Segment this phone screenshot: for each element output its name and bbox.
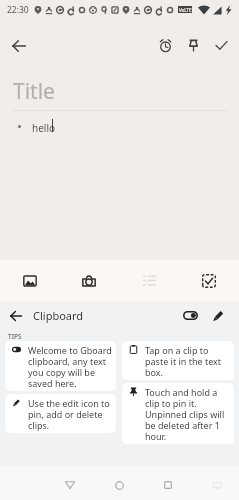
staticText: Use the edit icon to pin, add or delete … [28,397,113,431]
button[interactable]: Touch and hold a clip to pin it. Unpinne… [122,383,234,444]
button[interactable]: Set reminder [152,32,179,59]
button[interactable]: Pin note [180,32,207,59]
button[interactable]: Back [58,473,82,497]
staticText: Tap on a clip to paste it in the text bo… [145,344,231,378]
button[interactable]: Hide keyboard [205,473,229,497]
button[interactable]: Welcome to Gboard clipboard, any text yo… [5,341,116,391]
staticText: 22:30 [7,4,29,16]
staticText: Touch and hold a clip to pin it. Unpinne… [145,386,231,442]
staticText: VoLTE [179,7,192,13]
button[interactable]: Checklist [179,260,239,301]
button[interactable]: Edit clips [206,303,231,328]
button[interactable]: Home [107,473,131,497]
staticText: TIPS [8,332,22,341]
staticText: hello [32,121,56,135]
staticText: Title [13,77,55,106]
button[interactable]: Bulleted list [119,260,179,301]
button[interactable]: Take photo [59,260,119,301]
button[interactable]: Use the edit icon to pin, add or delete … [5,394,116,433]
button[interactable]: Tap on a clip to paste it in the text bo… [122,341,234,380]
staticText: Welcome to Gboard clipboard, any text yo… [28,344,113,389]
staticText: Clipboard [33,308,84,323]
button[interactable]: Clipboard on/off [178,303,203,328]
button[interactable]: Done [208,32,235,59]
button[interactable]: Back [3,303,28,328]
button[interactable]: Back [5,32,32,59]
button[interactable]: Add image [0,260,59,301]
button[interactable]: Recent apps [156,473,180,497]
